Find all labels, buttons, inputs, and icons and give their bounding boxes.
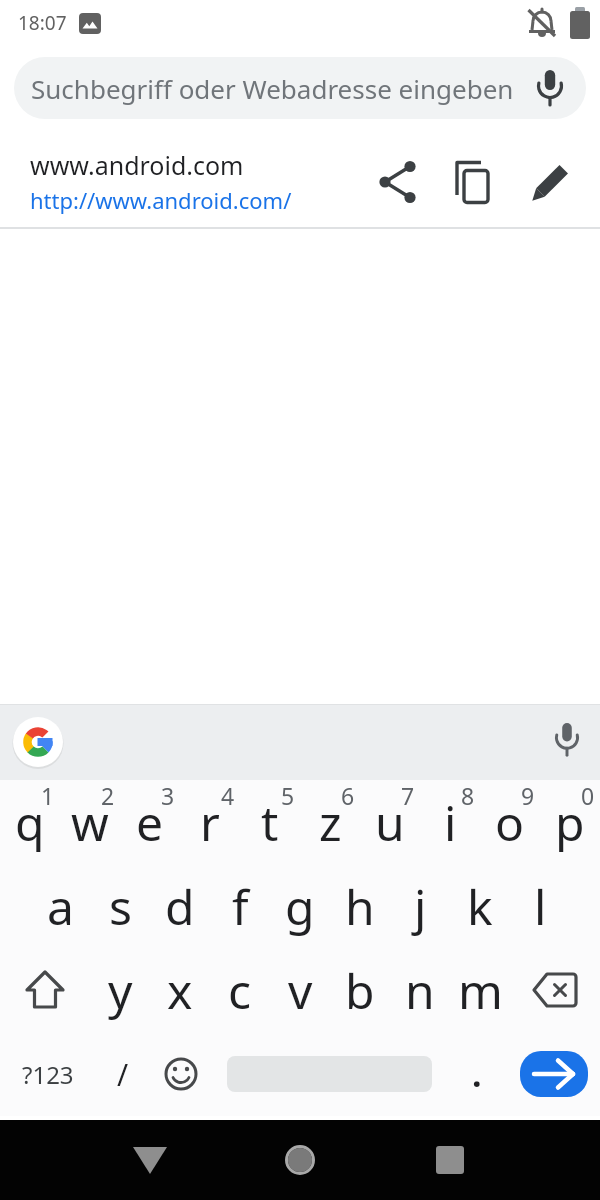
button[interactable]: z (300, 780, 360, 864)
button[interactable]: v (270, 948, 330, 1032)
staticText: m (458, 958, 503, 1023)
button[interactable]: p (540, 780, 600, 864)
staticText: s (109, 874, 132, 939)
button[interactable] (530, 63, 570, 113)
button[interactable]: u (360, 780, 420, 864)
button[interactable]: r (180, 780, 240, 864)
staticText: k (467, 874, 493, 939)
staticText: f (232, 874, 249, 939)
staticText: 3 (161, 780, 175, 811)
button[interactable]: Suchbegriff oder Webadresse eingeben (14, 57, 586, 119)
staticText: 9 (521, 780, 535, 811)
staticText: http://www.android.com/ (30, 185, 292, 215)
staticText: e (136, 790, 164, 855)
staticText: 5 (281, 780, 295, 811)
staticText: q (15, 790, 45, 855)
staticText: g (285, 874, 315, 939)
button[interactable]: d (150, 864, 210, 948)
staticText: j (414, 874, 427, 939)
button[interactable]: f (210, 864, 270, 948)
button[interactable] (547, 714, 587, 770)
staticText: 1 (41, 780, 55, 811)
button[interactable]: l (510, 864, 570, 948)
button[interactable]: / (95, 1032, 150, 1116)
staticText: w (71, 790, 109, 855)
staticText: h (345, 874, 375, 939)
staticText: c (228, 958, 252, 1023)
staticText: y (108, 958, 133, 1023)
staticText: 18:07 (18, 10, 67, 36)
staticText: 7 (401, 780, 415, 811)
button[interactable]: n (390, 948, 450, 1032)
button[interactable] (510, 948, 600, 1032)
button[interactable]: w (60, 780, 120, 864)
button[interactable]: a (30, 864, 90, 948)
staticText: Suchbegriff oder Webadresse eingeben (31, 71, 514, 106)
button[interactable]: g (270, 864, 330, 948)
staticText: d (165, 874, 195, 939)
button[interactable]: m (450, 948, 510, 1032)
staticText: o (495, 790, 525, 855)
staticText: 8 (461, 780, 475, 811)
button[interactable]: ?123 (0, 1032, 95, 1116)
button[interactable]: s (90, 864, 150, 948)
staticText: l (534, 874, 547, 939)
button[interactable]: q (0, 780, 60, 864)
staticText: a (47, 874, 74, 939)
button[interactable]: j (390, 864, 450, 948)
staticText: v (288, 958, 313, 1023)
staticText: ?123 (22, 1058, 74, 1091)
button[interactable]: . (447, 1032, 507, 1116)
button[interactable]: i (420, 780, 480, 864)
button[interactable]: t (240, 780, 300, 864)
staticText: . (472, 1051, 482, 1097)
staticText: x (167, 958, 193, 1023)
button[interactable]: b (330, 948, 390, 1032)
button[interactable] (150, 1032, 212, 1116)
button[interactable] (0, 948, 90, 1032)
button[interactable]: y (90, 948, 150, 1032)
button[interactable] (227, 1032, 432, 1116)
staticText: 6 (341, 780, 355, 811)
staticText: www.android.com (30, 148, 244, 182)
button[interactable] (410, 1120, 490, 1200)
staticText: p (555, 790, 585, 855)
staticText: n (405, 958, 435, 1023)
button[interactable]: www.android.com (0, 119, 600, 227)
staticText: i (444, 790, 457, 855)
staticText: 0 (581, 780, 595, 811)
button[interactable] (507, 1032, 600, 1116)
staticText: 4 (221, 780, 235, 811)
button[interactable] (523, 154, 579, 210)
staticText: / (117, 1054, 129, 1095)
button[interactable] (110, 1120, 190, 1200)
staticText: 2 (101, 780, 115, 811)
staticText: r (200, 790, 220, 855)
button[interactable]: h (330, 864, 390, 948)
staticText: t (261, 790, 279, 855)
button[interactable] (11, 715, 65, 769)
button[interactable] (260, 1120, 340, 1200)
button[interactable]: x (150, 948, 210, 1032)
button[interactable]: c (210, 948, 270, 1032)
button[interactable]: o (480, 780, 540, 864)
staticText: b (345, 958, 375, 1023)
staticText: u (375, 790, 405, 855)
staticText: z (319, 790, 342, 855)
button[interactable] (447, 154, 503, 210)
button[interactable]: k (450, 864, 510, 948)
button[interactable]: e (120, 780, 180, 864)
button[interactable] (370, 154, 426, 210)
